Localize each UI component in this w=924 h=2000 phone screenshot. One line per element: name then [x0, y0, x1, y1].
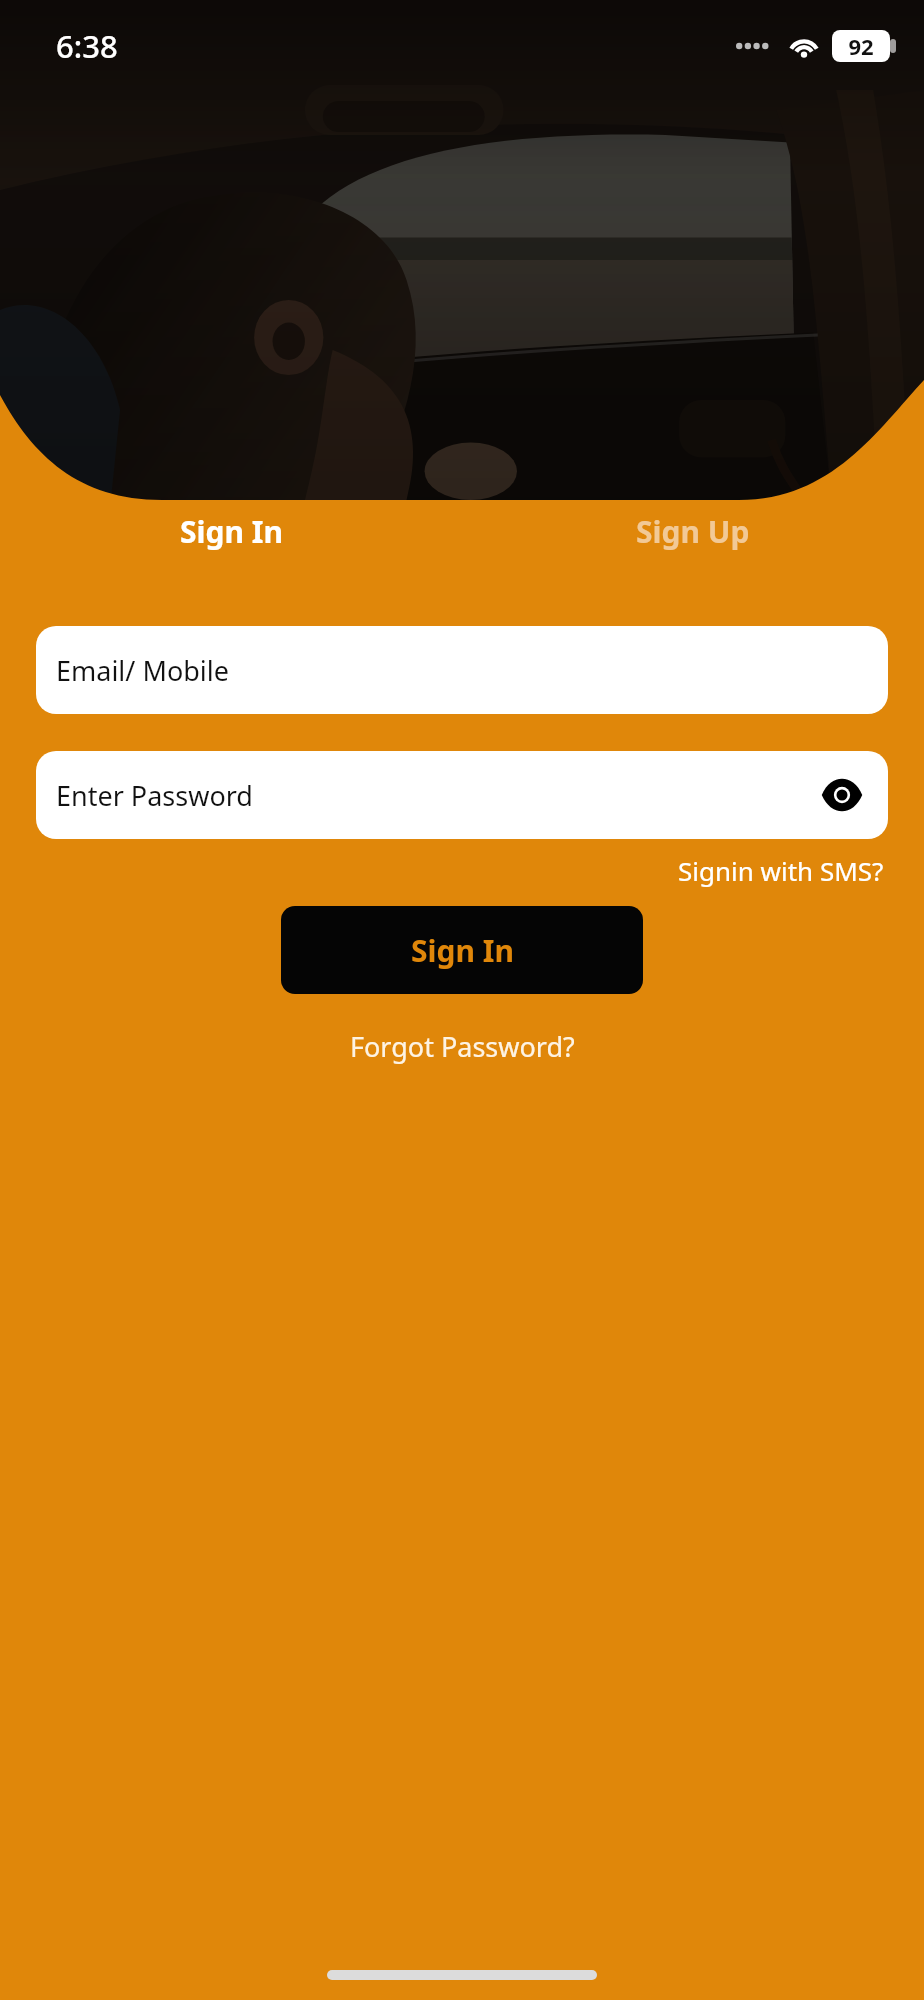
staticText: Sign In	[180, 511, 283, 552]
button[interactable]: Sign In	[0, 501, 462, 562]
button[interactable]: Sign In	[281, 906, 643, 994]
staticText: 92	[848, 31, 874, 61]
staticText: Sign In	[411, 930, 514, 971]
staticText: 6:38	[56, 25, 118, 67]
button[interactable]: Email/ Mobile	[36, 626, 888, 714]
button[interactable]: Enter Password	[36, 751, 888, 839]
button[interactable]: Forgot Password?	[340, 1020, 585, 1073]
staticText: Signin with SMS?	[678, 853, 884, 888]
staticText: Sign Up	[636, 511, 750, 552]
button[interactable]: Signin with SMS?	[674, 847, 888, 894]
staticText: Forgot Password?	[350, 1028, 575, 1065]
button[interactable]: Sign Up	[462, 501, 924, 562]
staticText: Email/ Mobile	[56, 652, 229, 689]
button[interactable]: Show password	[816, 769, 868, 821]
staticText: Enter Password	[56, 777, 253, 814]
